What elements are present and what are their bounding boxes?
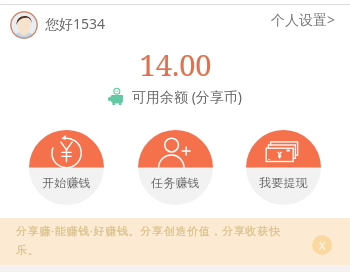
staticText: 个人设置> (271, 10, 336, 29)
staticText: 您好1534 (45, 14, 106, 33)
staticText: 14.00 (139, 45, 212, 84)
staticText: 我要提现 (259, 175, 308, 190)
button[interactable]: 个人设置> (271, 9, 336, 29)
button[interactable]: 您好1534 (45, 13, 106, 33)
staticText: 开始赚钱 (42, 175, 91, 190)
button[interactable]: 开始赚钱 (29, 130, 104, 205)
button[interactable]: 关闭 (312, 235, 332, 255)
staticText: 任务赚钱 (151, 175, 200, 190)
staticText: 可用余额 (分享币) (132, 87, 243, 106)
button[interactable]: 我要提现 (246, 130, 321, 205)
button[interactable]: 任务赚钱 (138, 130, 213, 205)
staticText: X (319, 238, 326, 253)
staticText: 分享赚·能赚钱·好赚钱。分享创造价值，分享收获快乐。 (16, 223, 291, 257)
button[interactable]: 头像 (10, 11, 38, 39)
